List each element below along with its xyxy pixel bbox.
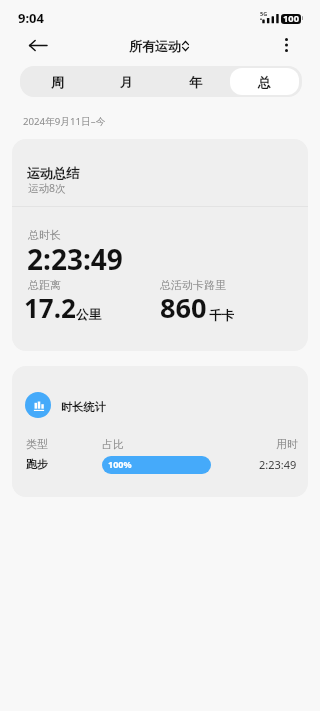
staticText: 2:23:49 xyxy=(259,457,297,472)
button[interactable]: 所有运动 xyxy=(129,38,189,54)
staticText: 月 xyxy=(120,74,133,90)
button[interactable]: 周 xyxy=(23,68,92,95)
button[interactable]: 年 xyxy=(161,68,230,95)
staticText: 2024年9月11日–今 xyxy=(23,115,106,128)
staticText: 跑步 xyxy=(26,457,48,471)
staticText: 100% xyxy=(108,458,132,470)
staticText: 总距离 xyxy=(28,278,61,292)
staticText: 类型 xyxy=(26,438,48,452)
staticText: 2:23:49 xyxy=(27,240,123,278)
staticText: 占比 xyxy=(102,438,124,452)
staticText: 所有运动 xyxy=(129,38,181,54)
staticText: 100 xyxy=(283,14,299,22)
staticText: 公里 xyxy=(76,307,101,323)
staticText: 时长统计 xyxy=(61,400,106,414)
staticText: 运动8次 xyxy=(28,181,66,195)
button[interactable]: 总 xyxy=(230,68,299,95)
staticText: 年 xyxy=(189,74,202,90)
staticText: 总 xyxy=(258,74,271,90)
staticText: 860 xyxy=(160,289,207,326)
button[interactable]: Back xyxy=(22,29,54,61)
staticText: 用时 xyxy=(276,438,298,452)
staticText: 5G xyxy=(260,10,268,17)
staticText: 总时长 xyxy=(28,228,61,242)
staticText: 总活动卡路里 xyxy=(160,278,226,292)
staticText: 运动总结 xyxy=(27,165,80,182)
button[interactable]: More options xyxy=(270,29,302,61)
staticText: 17.2 xyxy=(24,290,76,325)
staticText: 周 xyxy=(51,74,64,90)
staticText: 9:04 xyxy=(18,9,44,27)
button[interactable]: 月 xyxy=(92,68,161,95)
staticText: 千卡 xyxy=(209,308,234,324)
